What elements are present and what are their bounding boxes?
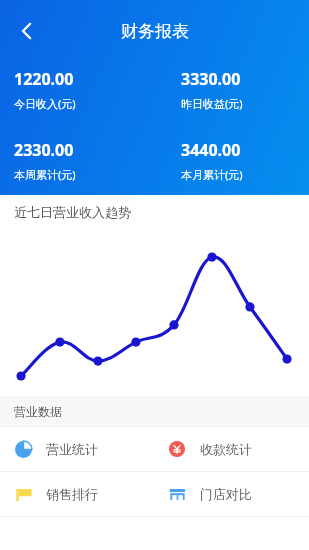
staticText: 门店对比 [200,486,252,502]
button[interactable]: 销售排行 [0,472,154,516]
staticText: 3330.00 [181,68,241,90]
staticText: 销售排行 [46,486,98,502]
staticText: 昨日收益(元) [181,96,243,111]
staticText: 2330.00 [14,139,74,161]
button[interactable]: 门店对比 [154,472,309,516]
staticText: 今日收入(元) [14,96,76,111]
button[interactable]: 营业统计 [0,427,154,471]
staticText: 3440.00 [181,139,241,161]
button[interactable]: 收款统计 [154,427,309,471]
staticText: 本月累计(元) [181,167,243,182]
staticText: 近七日营业收入趋势 [14,204,131,220]
staticText: 营业统计 [46,441,98,457]
button[interactable]: Back [4,8,50,54]
staticText: 1220.00 [14,68,74,90]
staticText: 收款统计 [200,441,252,457]
staticText: 营业数据 [14,404,62,419]
staticText: 财务报表 [121,21,189,42]
staticText: 本周累计(元) [14,167,76,182]
